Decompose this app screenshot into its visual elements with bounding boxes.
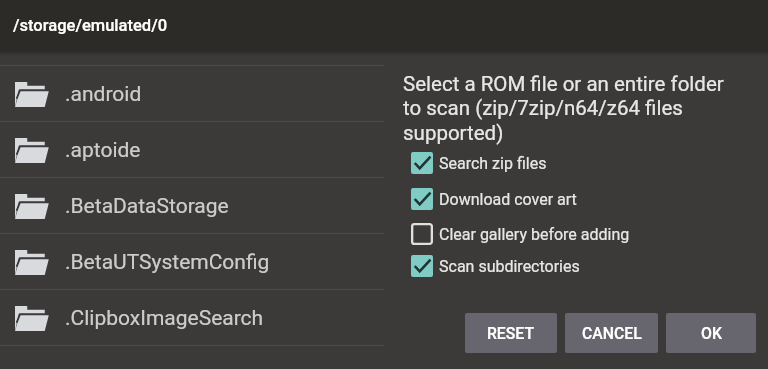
staticText: Search zip files — [439, 154, 547, 173]
button[interactable]: Download cover art — [403, 181, 756, 217]
staticText: Download cover art — [439, 190, 577, 209]
button[interactable]: Parent folder — [0, 50, 384, 65]
staticText: .android — [65, 82, 142, 107]
button[interactable]: RESET — [465, 313, 557, 353]
button[interactable]: .aptoide — [0, 122, 384, 177]
button[interactable]: Search zip files — [403, 145, 756, 181]
staticText: RESET — [487, 324, 535, 343]
staticText: .BetaUTSystemConfig — [65, 250, 270, 275]
staticText: Select a ROM file or an entire folder to… — [403, 72, 739, 145]
staticText: Clear gallery before adding — [439, 225, 630, 244]
button[interactable]: OK — [666, 313, 756, 353]
button[interactable]: .BetaUTSystemConfig — [0, 234, 384, 289]
staticText: .ClipboxImageSearch — [65, 306, 264, 331]
button[interactable]: .android — [0, 66, 384, 121]
staticText: Scan subdirectories — [439, 257, 580, 276]
staticText: .BetaDataStorage — [65, 194, 229, 219]
button[interactable]: Clear gallery before adding — [403, 217, 756, 251]
staticText: .aptoide — [65, 138, 141, 163]
button[interactable]: CANCEL — [565, 313, 658, 353]
button[interactable]: .BetaDataStorage — [0, 178, 384, 233]
button[interactable]: .ClipboxImageSearch — [0, 290, 384, 345]
button[interactable]: Scan subdirectories — [403, 251, 756, 281]
staticText: /storage/emulated/0 — [13, 16, 168, 35]
staticText: OK — [701, 324, 722, 343]
staticText: CANCEL — [582, 324, 642, 343]
